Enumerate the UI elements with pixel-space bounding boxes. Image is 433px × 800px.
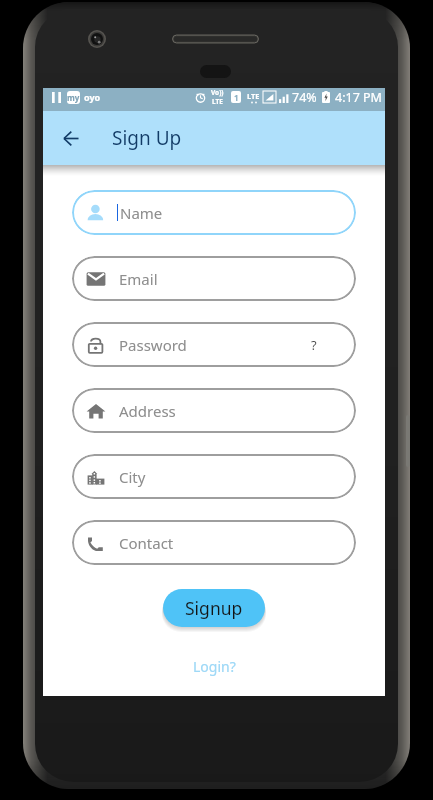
- staticText: City: [119, 467, 146, 487]
- button[interactable]: Login?: [187, 651, 242, 682]
- staticText: Vo)): [211, 88, 224, 97]
- staticText: Contact: [119, 533, 174, 553]
- staticText: my: [67, 92, 80, 103]
- button[interactable]: City: [72, 454, 356, 499]
- staticText: Email: [119, 269, 158, 289]
- staticText: 4:17 PM: [335, 89, 382, 106]
- staticText: Sign Up: [112, 125, 182, 151]
- button[interactable]: Email: [72, 256, 356, 301]
- button[interactable]: Address: [72, 388, 356, 433]
- button[interactable]: Signup: [163, 589, 265, 627]
- button[interactable]: Back: [54, 121, 88, 155]
- staticText: 1: [234, 92, 239, 103]
- staticText: Name: [120, 203, 163, 223]
- staticText: ?: [311, 336, 317, 354]
- staticText: oyo: [84, 91, 101, 103]
- staticText: Password: [119, 335, 187, 355]
- staticText: LTE: [247, 91, 260, 101]
- staticText: Signup: [185, 596, 243, 620]
- staticText: 74%: [292, 89, 317, 106]
- button[interactable]: Name: [72, 190, 356, 235]
- staticText: Login?: [193, 657, 236, 676]
- button[interactable]: Password: [72, 322, 356, 367]
- button[interactable]: Contact: [72, 520, 356, 565]
- staticText: LTE: [212, 97, 223, 106]
- staticText: Address: [119, 401, 176, 421]
